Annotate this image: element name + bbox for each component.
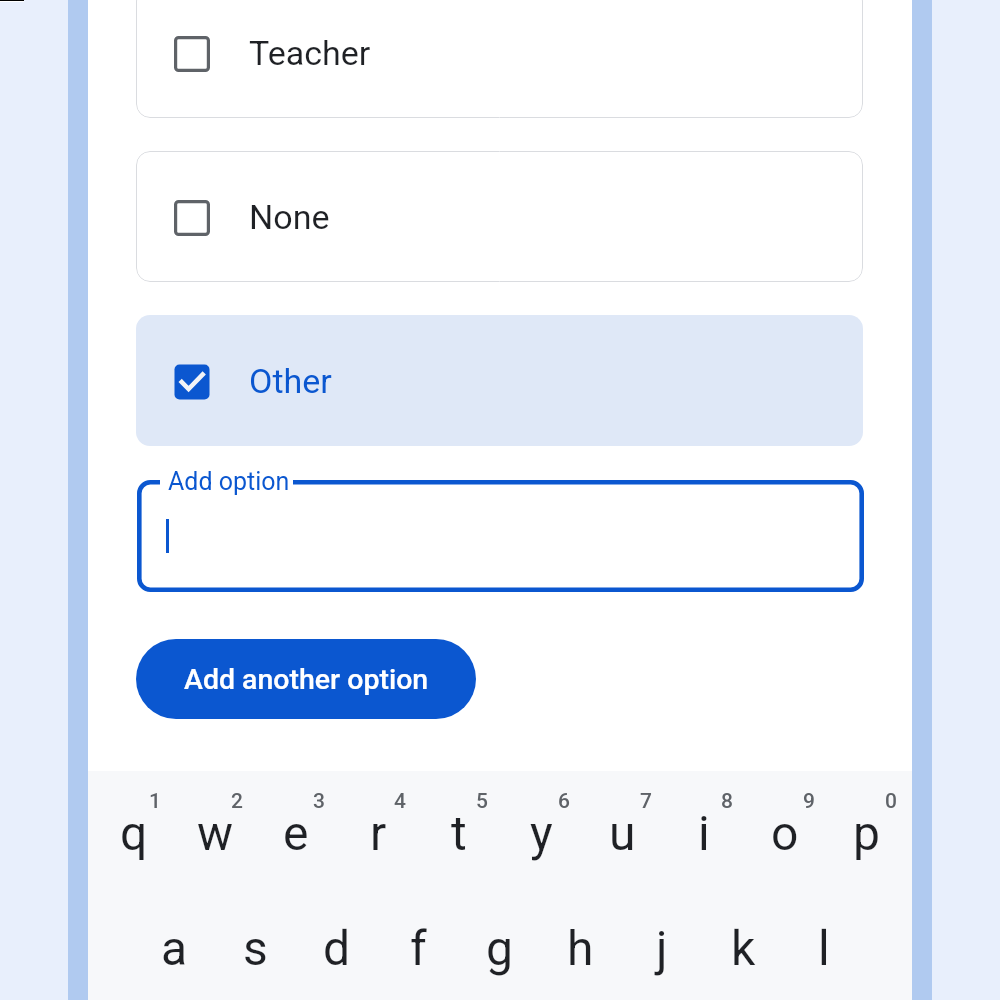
button[interactable]: f	[378, 890, 458, 994]
staticText: t	[451, 805, 467, 861]
staticText: 5	[476, 789, 488, 814]
staticText: k	[731, 920, 756, 976]
button[interactable]: s	[215, 890, 295, 994]
button[interactable]: q	[94, 771, 174, 875]
button[interactable]: g	[459, 890, 539, 994]
staticText: s	[243, 920, 268, 976]
staticText: None	[249, 197, 330, 237]
staticText: r	[370, 805, 387, 861]
button[interactable]: t	[419, 771, 499, 875]
staticText: 9	[803, 789, 815, 814]
button[interactable]: a	[134, 890, 214, 994]
staticText: 3	[313, 789, 325, 814]
button[interactable]: None, unchecked	[174, 200, 210, 236]
button[interactable]: None, unchecked	[136, 151, 863, 282]
button[interactable]: i	[664, 771, 744, 875]
staticText: d	[323, 920, 351, 976]
staticText: 4	[394, 789, 406, 814]
staticText: f	[410, 920, 427, 976]
staticText: j	[656, 920, 668, 976]
staticText: h	[567, 920, 594, 976]
button[interactable]: j	[622, 890, 702, 994]
button[interactable]: r	[338, 771, 418, 875]
staticText: i	[698, 805, 710, 861]
staticText: o	[771, 805, 799, 861]
button[interactable]: l	[784, 890, 864, 994]
button[interactable]: y	[501, 771, 581, 875]
staticText: p	[853, 805, 880, 861]
button[interactable]: o	[745, 771, 825, 875]
staticText: w	[197, 805, 234, 861]
staticText: g	[486, 920, 513, 976]
staticText: 2	[231, 789, 243, 814]
button[interactable]: e	[256, 771, 336, 875]
staticText: Add another option	[184, 663, 429, 696]
button[interactable]: w	[175, 771, 255, 875]
staticText: a	[161, 920, 188, 976]
staticText: u	[609, 805, 636, 861]
staticText: Teacher	[249, 33, 371, 73]
button[interactable]: Teacher, unchecked	[136, 0, 863, 118]
button[interactable]: Other, checked	[136, 315, 863, 446]
staticText: 6	[558, 789, 570, 814]
staticText: 0	[885, 789, 897, 814]
staticText: Other	[249, 361, 332, 401]
staticText: y	[530, 805, 553, 861]
button[interactable]: Add another option	[136, 639, 476, 719]
staticText: 7	[640, 789, 652, 814]
button[interactable]: k	[703, 890, 783, 994]
button[interactable]: h	[540, 890, 620, 994]
staticText: q	[120, 805, 148, 861]
button[interactable]: p	[826, 771, 906, 875]
staticText: 1	[149, 789, 161, 814]
button[interactable]: Add option text field	[137, 480, 864, 592]
button[interactable]: Teacher, unchecked	[174, 36, 210, 72]
button[interactable]: d	[297, 890, 377, 994]
staticText: e	[283, 805, 309, 861]
button[interactable]: Other, checked	[174, 364, 210, 400]
staticText: l	[818, 920, 830, 976]
staticText: 8	[721, 789, 733, 814]
staticText: Add option	[168, 467, 290, 496]
button[interactable]: u	[582, 771, 662, 875]
